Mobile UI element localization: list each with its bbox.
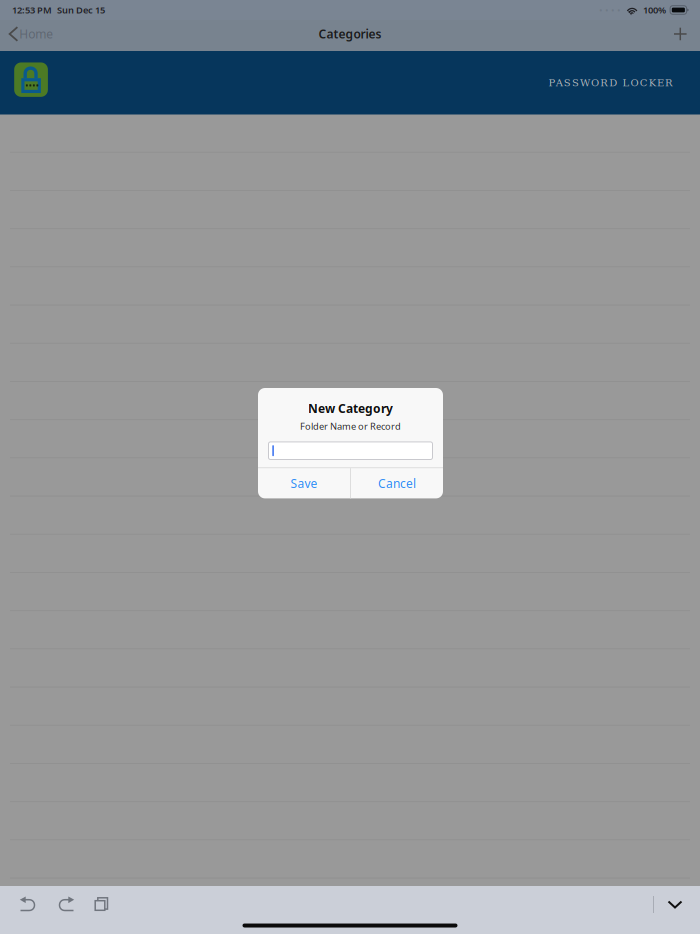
staticText: Cancel — [378, 475, 416, 491]
staticText: Folder Name or Record — [300, 420, 401, 432]
button[interactable]: Redo — [47, 890, 84, 918]
staticText: Home — [19, 26, 53, 42]
button[interactable]: Paste — [84, 890, 121, 918]
staticText: PASSWORD LOCKER — [549, 77, 673, 88]
button[interactable]: Undo — [10, 890, 47, 918]
staticText: Categories — [318, 26, 381, 42]
staticText: Sun Dec 15 — [57, 4, 105, 16]
staticText: 12:53 PM — [12, 4, 52, 16]
button[interactable]: Cancel — [351, 468, 443, 498]
button[interactable]: Home — [0, 20, 53, 48]
staticText: 100% — [643, 4, 666, 16]
button[interactable]: Hide keyboard — [654, 890, 696, 918]
staticText: New Category — [308, 400, 393, 416]
staticText: Save — [290, 475, 317, 491]
button[interactable]: Save — [258, 468, 350, 498]
button[interactable]: Add — [674, 22, 700, 46]
